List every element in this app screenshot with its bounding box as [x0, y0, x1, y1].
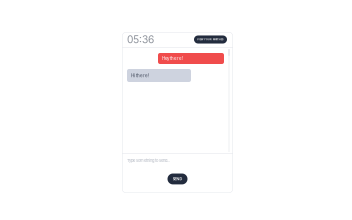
staticText: Type something to send... [127, 158, 170, 163]
staticText: 05:36 [127, 33, 154, 46]
button[interactable]: Hey there! [158, 53, 224, 64]
staticText: SEND [172, 177, 182, 181]
button[interactable]: VIEW YOUR MATCHES [194, 35, 227, 43]
button[interactable]: SEND [167, 173, 187, 184]
staticText: Hi there! [131, 73, 149, 78]
button[interactable]: Type something to send... [127, 158, 228, 163]
button[interactable]: Hi there! [127, 69, 191, 82]
staticText: Hey there! [162, 56, 183, 61]
staticText: VIEW YOUR MATCHES [197, 38, 224, 41]
